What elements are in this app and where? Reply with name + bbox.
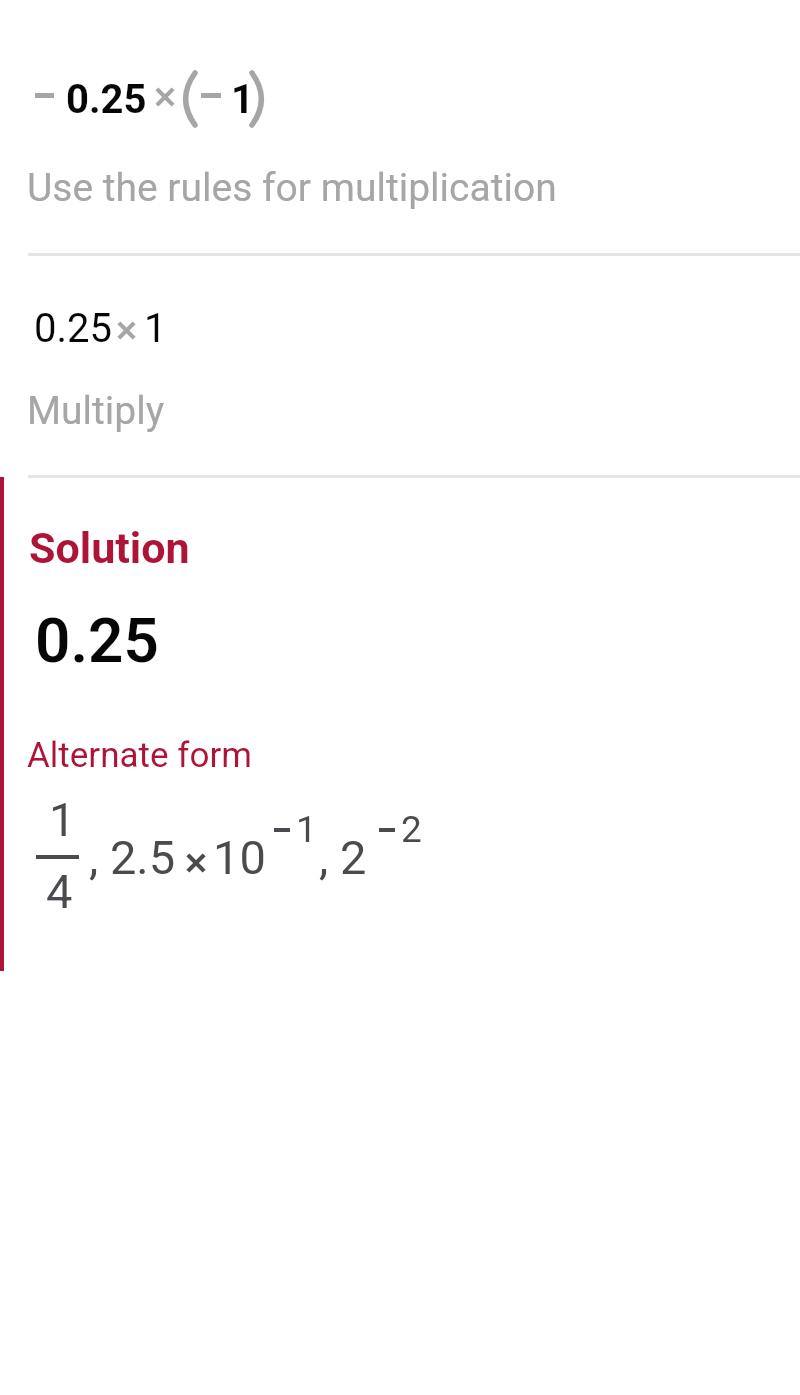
- staticText: 0.25: [34, 305, 112, 352]
- staticText: , 2.5: [89, 830, 176, 885]
- staticText: 4: [46, 864, 73, 919]
- staticText: 0.25: [35, 604, 159, 677]
- button[interactable]: Step 2: 0.25 times 1. Multiply: [0, 256, 800, 475]
- staticText: 1: [49, 792, 76, 847]
- staticText: Solution: [29, 523, 190, 573]
- staticText: 2: [401, 808, 422, 851]
- staticText: 1: [144, 305, 167, 352]
- staticText: , 2: [319, 830, 367, 885]
- button[interactable]: Step 1: minus 0.25 times minus 1. Use th…: [0, 0, 800, 253]
- staticText: Use the rules for multiplication: [27, 165, 557, 211]
- staticText: 0.25: [66, 76, 147, 123]
- button[interactable]: Solution 0.25, alternate form one quarte…: [0, 478, 800, 971]
- staticText: 1: [296, 808, 317, 851]
- staticText: 1: [231, 76, 254, 123]
- staticText: Multiply: [27, 388, 165, 434]
- staticText: 10: [213, 830, 266, 885]
- staticText: Alternate form: [27, 735, 252, 776]
